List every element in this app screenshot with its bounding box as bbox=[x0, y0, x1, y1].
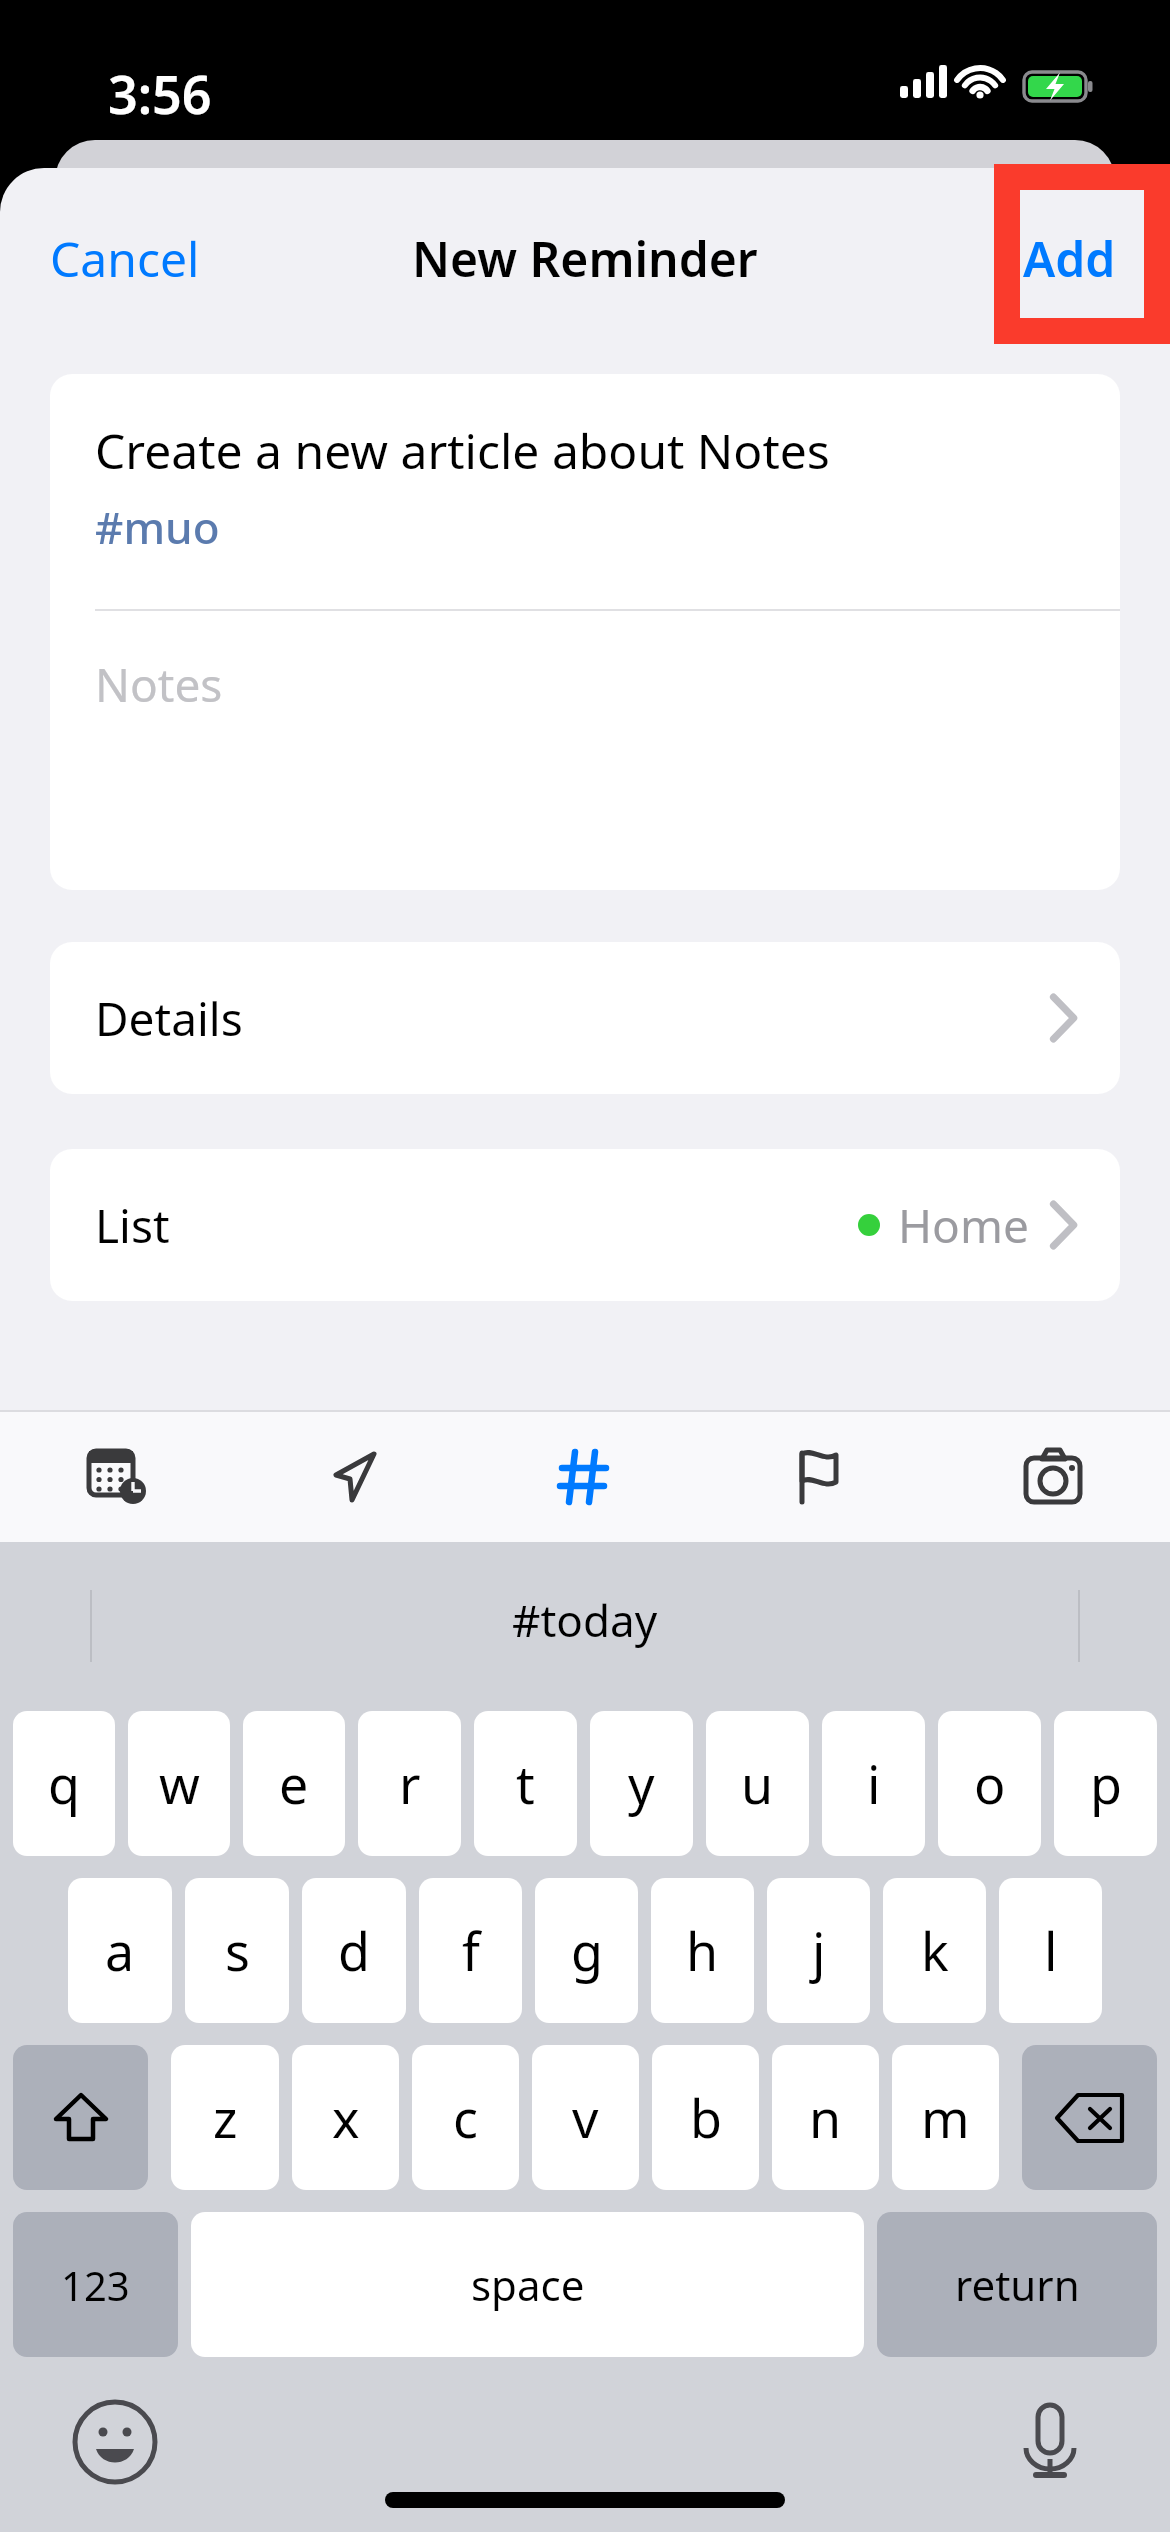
staticText: g bbox=[571, 1915, 603, 1986]
button[interactable]: m bbox=[892, 2045, 999, 2190]
button[interactable]: q bbox=[13, 1711, 115, 1856]
button[interactable]: s bbox=[185, 1878, 289, 2023]
staticText: b bbox=[690, 2082, 722, 2153]
staticText: Home bbox=[898, 1194, 1029, 1257]
staticText: 3:56 bbox=[108, 58, 212, 129]
button[interactable]: f bbox=[419, 1878, 522, 2023]
button[interactable]: Dictate bbox=[1005, 2397, 1095, 2487]
staticText: space bbox=[471, 2256, 585, 2313]
staticText: o bbox=[974, 1748, 1006, 1819]
button[interactable]: a bbox=[68, 1878, 172, 2023]
button[interactable]: u bbox=[706, 1711, 809, 1856]
button[interactable]: j bbox=[767, 1878, 870, 2023]
button[interactable]: Add flag bbox=[702, 1412, 936, 1542]
button[interactable]: d bbox=[302, 1878, 406, 2023]
staticText: 123 bbox=[61, 2258, 130, 2312]
staticText: l bbox=[1044, 1915, 1058, 1986]
staticText: v bbox=[572, 2082, 599, 2153]
staticText: x bbox=[332, 2082, 360, 2153]
staticText: d bbox=[338, 1915, 370, 1986]
staticText: f bbox=[462, 1915, 480, 1986]
button[interactable]: y bbox=[590, 1711, 693, 1856]
staticText: m bbox=[921, 2082, 970, 2153]
button[interactable]: Add photo bbox=[936, 1412, 1170, 1542]
button[interactable]: i bbox=[822, 1711, 925, 1856]
button[interactable]: Delete bbox=[1022, 2045, 1157, 2190]
staticText: Notes bbox=[95, 653, 223, 716]
button[interactable]: e bbox=[243, 1711, 345, 1856]
button[interactable]: Create a new article about Notes bbox=[50, 374, 1120, 890]
button[interactable]: Add date bbox=[0, 1412, 234, 1542]
button[interactable]: List bbox=[50, 1149, 1120, 1301]
staticText: k bbox=[921, 1915, 949, 1986]
button[interactable]: Add bbox=[995, 208, 1144, 309]
staticText: n bbox=[809, 2082, 842, 2153]
button[interactable]: w bbox=[128, 1711, 230, 1856]
button[interactable]: 123 bbox=[13, 2212, 178, 2357]
staticText: New Reminder bbox=[412, 226, 758, 291]
staticText: #today bbox=[512, 1590, 658, 1650]
button[interactable]: l bbox=[999, 1878, 1102, 2023]
staticText: List bbox=[95, 1194, 170, 1257]
staticText: Cancel bbox=[50, 226, 200, 291]
button[interactable]: c bbox=[412, 2045, 519, 2190]
button[interactable]: Add tag bbox=[468, 1412, 702, 1542]
staticText: j bbox=[812, 1915, 826, 1986]
staticText: r bbox=[399, 1748, 421, 1819]
button[interactable]: t bbox=[474, 1711, 577, 1856]
staticText: Create a new article about Notes bbox=[95, 418, 830, 483]
button[interactable]: x bbox=[292, 2045, 399, 2190]
button[interactable]: r bbox=[358, 1711, 461, 1856]
staticText: z bbox=[213, 2082, 238, 2153]
staticText: return bbox=[955, 2256, 1080, 2313]
staticText: a bbox=[105, 1915, 135, 1986]
button[interactable]: return bbox=[877, 2212, 1157, 2357]
staticText: q bbox=[48, 1748, 80, 1819]
button[interactable]: Shift bbox=[13, 2045, 148, 2190]
button[interactable]: Cancel bbox=[20, 208, 230, 309]
button[interactable]: v bbox=[532, 2045, 639, 2190]
staticText: y bbox=[628, 1748, 655, 1819]
button[interactable]: n bbox=[772, 2045, 879, 2190]
staticText: Details bbox=[95, 987, 243, 1050]
button[interactable]: k bbox=[883, 1878, 986, 2023]
staticText: #muo bbox=[95, 497, 220, 557]
button[interactable]: z bbox=[171, 2045, 279, 2190]
button[interactable]: p bbox=[1054, 1711, 1157, 1856]
button[interactable]: Emoji bbox=[70, 2397, 160, 2487]
button[interactable]: space bbox=[191, 2212, 864, 2357]
staticText: e bbox=[279, 1748, 309, 1819]
button[interactable]: Add location bbox=[234, 1412, 468, 1542]
staticText: c bbox=[453, 2082, 478, 2153]
staticText: u bbox=[741, 1748, 774, 1819]
staticText: Add bbox=[1023, 226, 1116, 291]
staticText: w bbox=[159, 1748, 200, 1819]
button[interactable]: g bbox=[535, 1878, 638, 2023]
staticText: p bbox=[1090, 1748, 1122, 1819]
staticText: t bbox=[516, 1748, 535, 1819]
staticText: s bbox=[225, 1915, 250, 1986]
button[interactable]: b bbox=[652, 2045, 759, 2190]
button[interactable]: h bbox=[651, 1878, 754, 2023]
staticText: i bbox=[867, 1748, 881, 1819]
button[interactable]: o bbox=[938, 1711, 1041, 1856]
button[interactable]: Details bbox=[50, 942, 1120, 1094]
staticText: h bbox=[686, 1915, 719, 1986]
